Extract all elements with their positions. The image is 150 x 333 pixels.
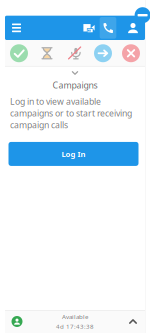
button[interactable]: Pending <box>33 40 61 66</box>
button[interactable]: Mute <box>61 40 89 66</box>
button[interactable]: Video call <box>79 16 98 40</box>
button[interactable]: Ready <box>5 40 33 66</box>
button[interactable]: Menu <box>5 16 28 40</box>
staticText: Log in to view available campaigns or to… <box>10 95 132 131</box>
button[interactable]: Hang up <box>117 40 145 66</box>
button[interactable]: Call <box>98 16 117 40</box>
button[interactable]: Contacts <box>123 16 142 40</box>
staticText: Available <box>62 312 88 321</box>
button[interactable]: Log In <box>8 142 138 166</box>
button[interactable]: Collapse panel <box>5 66 145 79</box>
staticText: Campaigns <box>52 79 97 91</box>
staticText: 4d 17:43:38 <box>56 322 94 331</box>
button[interactable]: Expand <box>121 310 145 333</box>
staticText: Log In <box>61 149 85 159</box>
button[interactable]: Transfer <box>89 40 117 66</box>
